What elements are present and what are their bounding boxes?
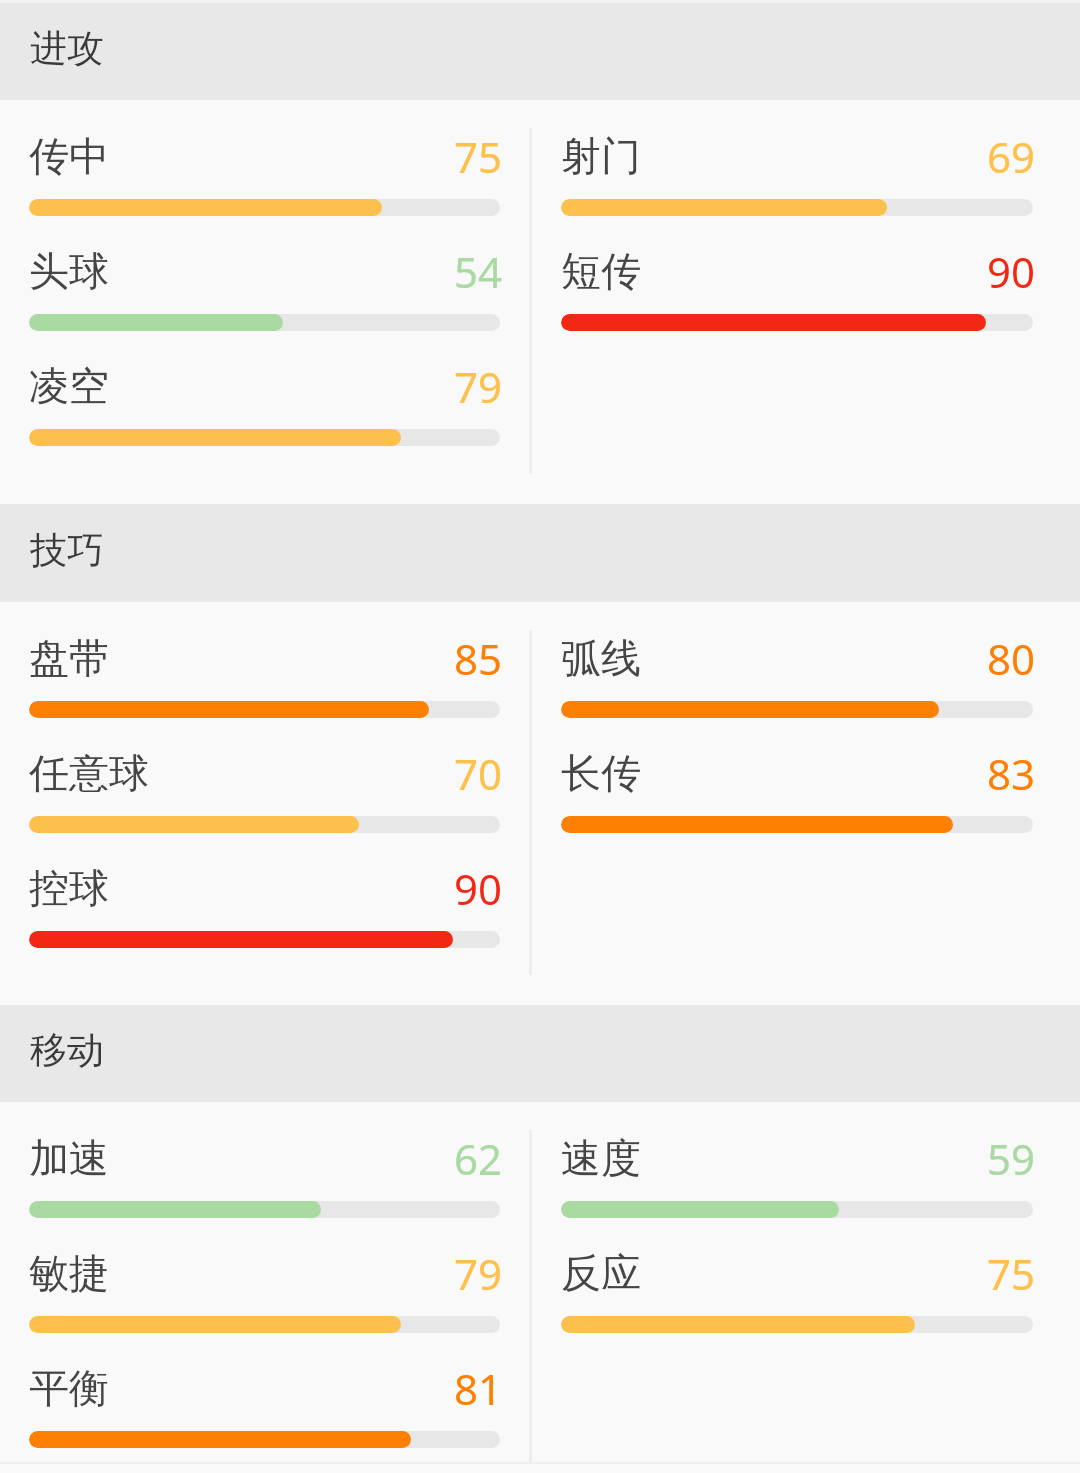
button[interactable]: 头球 [29,246,500,361]
staticText: 弧线 [561,633,641,683]
staticText: 头球 [29,246,109,296]
staticText: 进攻 [30,25,104,72]
staticText: 81 [31,1360,502,1417]
staticText: 平衡 [29,1363,109,1413]
button[interactable]: 传中 [29,131,500,246]
button[interactable]: 射门 [561,131,1033,246]
staticText: 69 [563,128,1035,185]
staticText: 85 [31,630,502,687]
staticText: 控球 [29,863,109,913]
button[interactable]: 加速 [29,1133,500,1248]
staticText: 短传 [561,246,641,296]
staticText: 70 [31,745,502,802]
staticText: 90 [563,243,1035,300]
button[interactable]: 长传 [561,748,1033,863]
staticText: 54 [31,243,502,300]
staticText: 90 [31,860,502,917]
staticText: 凌空 [29,361,109,411]
staticText: 速度 [561,1133,641,1183]
staticText: 任意球 [29,748,149,798]
staticText: 加速 [29,1133,109,1183]
staticText: 75 [31,128,502,185]
button[interactable]: 控球 [29,863,500,978]
staticText: 79 [31,1245,502,1302]
button[interactable]: 弧线 [561,633,1033,748]
button[interactable]: 短传 [561,246,1033,361]
staticText: 长传 [561,748,641,798]
button[interactable]: 任意球 [29,748,500,863]
staticText: 反应 [561,1248,641,1298]
button[interactable]: 敏捷 [29,1248,500,1363]
staticText: 盘带 [29,633,109,683]
button[interactable]: 速度 [561,1133,1033,1248]
staticText: 83 [563,745,1035,802]
staticText: 59 [563,1130,1035,1187]
button[interactable]: 凌空 [29,361,500,476]
staticText: 传中 [29,131,109,181]
staticText: 75 [563,1245,1035,1302]
button[interactable]: 反应 [561,1248,1033,1363]
button[interactable]: 平衡 [29,1363,500,1473]
staticText: 79 [31,358,502,415]
staticText: 技巧 [30,527,104,574]
staticText: 射门 [561,131,641,181]
staticText: 62 [31,1130,502,1187]
staticText: 80 [563,630,1035,687]
staticText: 移动 [30,1027,104,1074]
button[interactable]: 盘带 [29,633,500,748]
staticText: 敏捷 [29,1248,109,1298]
